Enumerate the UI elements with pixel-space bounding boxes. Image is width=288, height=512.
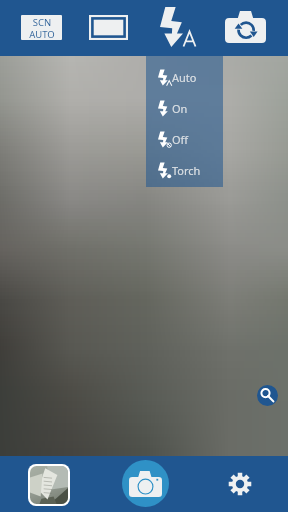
button[interactable]: Switch camera	[225, 11, 266, 43]
button[interactable]: Off	[146, 124, 223, 155]
button[interactable]: SCN AUTO	[21, 15, 62, 40]
button[interactable]: Aspect ratio	[89, 15, 128, 40]
button[interactable]: On	[146, 93, 223, 124]
button[interactable]: Flash mode	[158, 4, 198, 48]
button[interactable]: Gallery	[30, 466, 68, 504]
staticText: Torch	[172, 163, 201, 178]
button[interactable]: Take photo	[122, 460, 169, 507]
staticText: Auto	[172, 70, 197, 85]
staticText: On	[172, 101, 188, 116]
button[interactable]: Zoom	[257, 385, 278, 406]
button[interactable]: Auto	[146, 62, 223, 93]
button[interactable]: Settings	[228, 472, 252, 496]
staticText: Off	[172, 132, 189, 147]
button[interactable]: Torch	[146, 155, 223, 186]
staticText: SCN AUTO	[29, 16, 55, 40]
